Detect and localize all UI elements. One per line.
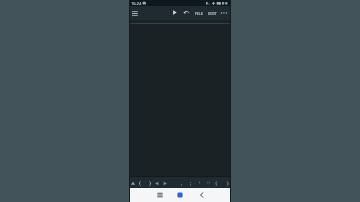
button[interactable] — [182, 8, 191, 17]
button[interactable] — [186, 177, 195, 188]
button[interactable] — [219, 8, 229, 18]
button[interactable] — [137, 177, 145, 188]
staticText: EDIT — [208, 11, 217, 16]
staticText: FILE — [195, 11, 203, 16]
button[interactable] — [161, 177, 169, 188]
button[interactable]: EDIT — [206, 8, 218, 18]
button[interactable] — [130, 8, 140, 18]
staticText: 16:24 — [131, 1, 142, 6]
button[interactable] — [222, 177, 231, 188]
button[interactable] — [129, 177, 137, 188]
button[interactable] — [153, 177, 161, 188]
button[interactable] — [204, 177, 213, 188]
button[interactable] — [213, 177, 222, 188]
button[interactable] — [174, 189, 186, 201]
button[interactable] — [170, 8, 179, 17]
button[interactable] — [195, 177, 204, 188]
button[interactable] — [154, 189, 166, 201]
button[interactable] — [177, 177, 186, 188]
button[interactable] — [145, 177, 153, 188]
button[interactable] — [196, 189, 208, 201]
button[interactable]: FILE — [193, 8, 205, 18]
